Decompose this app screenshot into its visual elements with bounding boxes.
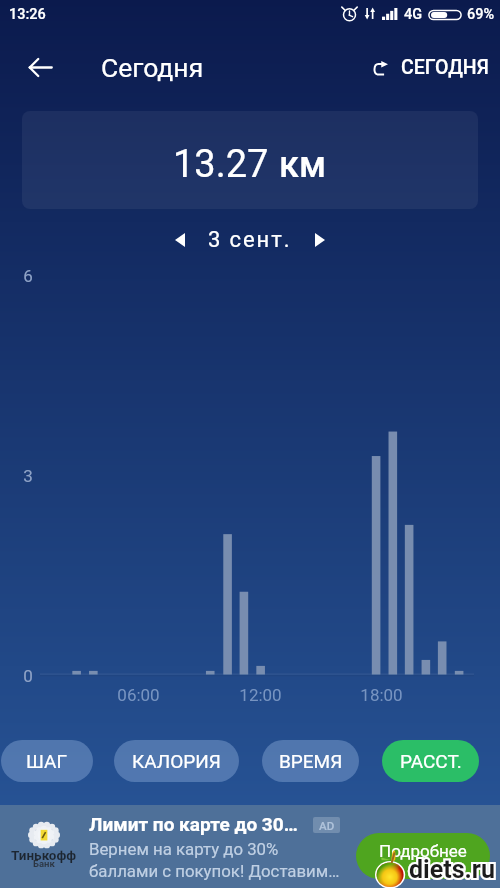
button[interactable]: Previous day bbox=[164, 224, 196, 256]
staticText: 18:00 bbox=[360, 685, 403, 705]
staticText: Тинькофф bbox=[11, 847, 77, 863]
staticText: баллами с покупок! Доставим… bbox=[89, 861, 340, 881]
button[interactable]: Тинькофф bbox=[0, 805, 500, 888]
staticText: AD bbox=[319, 819, 335, 832]
button[interactable]: Back bbox=[16, 43, 64, 91]
staticText: КАЛОРИЯ bbox=[132, 750, 221, 772]
staticText: 12:00 bbox=[239, 685, 282, 705]
staticText: 6 bbox=[23, 266, 33, 286]
staticText: Подробнее bbox=[379, 841, 467, 861]
staticText: Банк bbox=[33, 858, 55, 869]
button[interactable]: Подробнее bbox=[356, 833, 490, 879]
button[interactable]: Next day bbox=[304, 224, 336, 256]
button[interactable]: ВРЕМЯ bbox=[262, 740, 359, 782]
staticText: 13:26 bbox=[9, 6, 46, 23]
staticText: diets.ru bbox=[409, 855, 495, 884]
staticText: 69% bbox=[467, 6, 495, 23]
staticText: ШАГ bbox=[26, 750, 68, 772]
button[interactable]: 13.27 bbox=[22, 111, 478, 209]
staticText: 0 bbox=[23, 666, 33, 686]
staticText: Сегодня bbox=[101, 52, 204, 83]
staticText: 4G bbox=[404, 6, 423, 23]
staticText: ВРЕМЯ bbox=[279, 750, 343, 772]
staticText: 06:00 bbox=[117, 685, 160, 705]
button[interactable]: КАЛОРИЯ bbox=[114, 740, 239, 782]
button[interactable]: ШАГ bbox=[1, 740, 93, 782]
staticText: 3 сент. bbox=[208, 227, 292, 253]
button[interactable]: СЕГОДНЯ bbox=[365, 46, 497, 89]
button[interactable]: РАССТ. bbox=[382, 740, 479, 782]
staticText: Вернем на карту до 30% bbox=[89, 839, 279, 859]
staticText: км bbox=[279, 144, 327, 186]
staticText: Лимит по карте до 30… bbox=[89, 813, 298, 835]
staticText: СЕГОДНЯ bbox=[401, 56, 489, 79]
staticText: 13.27 bbox=[173, 142, 269, 187]
staticText: diets.ru bbox=[409, 855, 495, 884]
staticText: РАССТ. bbox=[400, 750, 462, 772]
staticText: 3 bbox=[23, 466, 33, 486]
